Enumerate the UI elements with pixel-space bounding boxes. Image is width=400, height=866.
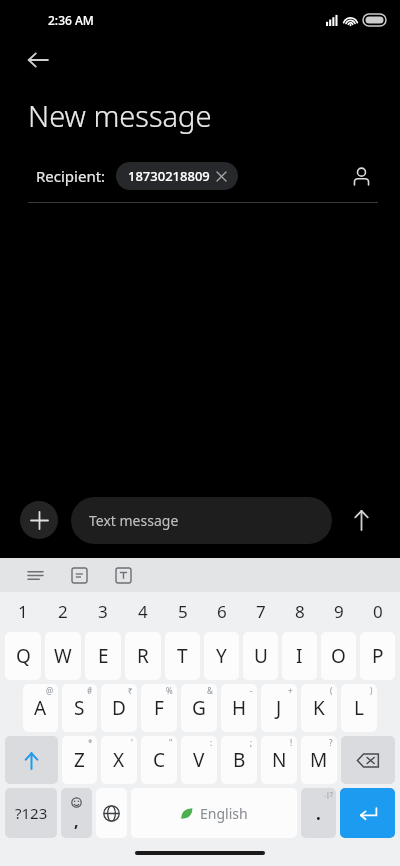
button[interactable]: E	[85, 632, 121, 680]
button[interactable]: V	[181, 736, 217, 784]
staticText: (	[330, 685, 333, 696]
staticText: K	[313, 695, 325, 721]
staticText: C	[153, 747, 166, 773]
staticText: 18730218809	[128, 167, 210, 185]
button[interactable]: Change language	[96, 788, 127, 838]
staticText: '	[131, 737, 133, 748]
staticText: 7	[256, 600, 266, 623]
staticText: -	[250, 685, 253, 696]
button[interactable]: 7	[241, 592, 280, 630]
button[interactable]: 0	[358, 592, 397, 630]
staticText: .|?	[324, 790, 333, 800]
button[interactable]: ?123	[5, 788, 57, 838]
button[interactable]: Add attachment	[20, 501, 58, 539]
button[interactable]: 4	[123, 592, 163, 630]
button[interactable]: O	[321, 632, 356, 680]
staticText: M	[310, 747, 328, 773]
button[interactable]: Menu	[20, 560, 50, 590]
staticText: B	[233, 747, 246, 773]
button[interactable]: D	[101, 684, 137, 732]
button[interactable]: I	[282, 632, 317, 680]
button[interactable]: Back	[18, 40, 58, 80]
button[interactable]: T	[165, 632, 200, 680]
staticText: T	[177, 643, 188, 669]
staticText: New message	[28, 96, 212, 135]
button[interactable]: Q	[5, 632, 41, 680]
staticText: 6	[217, 600, 227, 623]
button[interactable]: 5	[163, 592, 202, 630]
staticText: I	[296, 643, 303, 669]
button[interactable]: M	[301, 736, 337, 784]
button[interactable]: Backspace	[341, 736, 395, 784]
button[interactable]: Clipboard	[64, 560, 94, 590]
button[interactable]: Text message	[71, 497, 332, 544]
button[interactable]: English	[131, 788, 297, 838]
button[interactable]: Y	[204, 632, 239, 680]
button[interactable]: 18730218809	[116, 162, 238, 190]
staticText: Y	[216, 643, 227, 669]
staticText: .	[316, 802, 321, 825]
button[interactable]: W	[45, 632, 81, 680]
staticText: U	[254, 643, 268, 669]
staticText: 0	[373, 600, 383, 623]
button[interactable]: A	[23, 684, 58, 732]
staticText: 3	[98, 600, 108, 623]
staticText: :	[210, 737, 213, 748]
staticText: 2:36 AM	[48, 12, 94, 28]
staticText: ?	[329, 737, 333, 748]
staticText: ,	[74, 810, 79, 832]
staticText: ;	[250, 737, 253, 748]
staticText: Text message	[89, 511, 179, 530]
button[interactable]: Text settings	[108, 560, 138, 590]
button[interactable]: Send	[342, 501, 380, 539]
button[interactable]: Contacts	[344, 159, 378, 193]
button[interactable]: N	[261, 736, 297, 784]
button[interactable]: Z	[62, 736, 97, 784]
staticText: English	[200, 804, 248, 823]
button[interactable]: 3	[83, 592, 123, 630]
staticText: +	[288, 685, 293, 696]
button[interactable]: J	[261, 684, 297, 732]
staticText: N	[272, 747, 287, 773]
button[interactable]: Enter	[340, 788, 395, 838]
button[interactable]: 8	[280, 592, 319, 630]
button[interactable]: R	[125, 632, 161, 680]
staticText: J	[276, 695, 282, 721]
button[interactable]: 2	[43, 592, 83, 630]
staticText: D	[112, 695, 126, 721]
staticText: P	[372, 643, 384, 669]
staticText: #	[87, 685, 93, 696]
button[interactable]: 9	[319, 592, 358, 630]
button[interactable]: U	[243, 632, 278, 680]
button[interactable]: F	[141, 684, 177, 732]
staticText: ?123	[15, 803, 48, 823]
staticText: *	[88, 737, 93, 748]
staticText: X	[113, 747, 125, 773]
staticText: @	[46, 685, 54, 696]
staticText: Q	[16, 643, 31, 669]
staticText: Recipient:	[36, 166, 106, 186]
button[interactable]: 1	[3, 592, 43, 630]
button[interactable]: P	[360, 632, 395, 680]
staticText: E	[98, 643, 109, 669]
staticText: A	[34, 695, 47, 721]
button[interactable]: K	[301, 684, 337, 732]
button[interactable]: B	[221, 736, 257, 784]
button[interactable]: Emoji and comma	[61, 788, 92, 838]
button[interactable]: X	[101, 736, 137, 784]
staticText: 5	[178, 600, 188, 623]
button[interactable]: H	[221, 684, 257, 732]
button[interactable]: .	[301, 788, 336, 838]
button[interactable]: L	[341, 684, 377, 732]
staticText: W	[54, 643, 72, 669]
staticText: 8	[295, 600, 305, 623]
button[interactable]: G	[181, 684, 217, 732]
staticText: H	[232, 695, 247, 721]
staticText: O	[331, 643, 346, 669]
button[interactable]: Shift	[5, 736, 58, 784]
staticText: V	[193, 747, 205, 773]
button[interactable]: S	[62, 684, 97, 732]
button[interactable]: C	[141, 736, 177, 784]
staticText: L	[354, 695, 364, 721]
button[interactable]: 6	[202, 592, 241, 630]
